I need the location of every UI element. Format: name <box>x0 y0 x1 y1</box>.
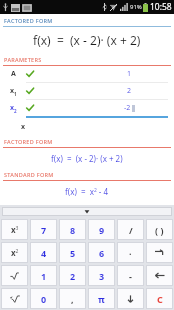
staticText: 2 <box>127 86 132 96</box>
staticText: 6 <box>99 247 105 259</box>
button[interactable]: Arrow right <box>146 242 173 263</box>
button[interactable]: · <box>117 242 144 263</box>
staticText: x <box>21 122 26 132</box>
staticText: 91% <box>130 3 142 11</box>
staticText: 0 <box>41 293 47 305</box>
staticText: 3 <box>99 270 105 282</box>
button[interactable]: 8 <box>59 219 86 240</box>
button[interactable]: Hide keyboard <box>2 207 172 216</box>
staticText: ( ) <box>155 224 164 236</box>
button[interactable]: , <box>59 288 86 309</box>
button[interactable]: 6 <box>88 242 115 263</box>
staticText: x3 <box>11 224 19 235</box>
staticText: 1 <box>127 69 132 79</box>
button[interactable]: x2 <box>0 100 174 118</box>
button[interactable]: Square root <box>1 265 28 286</box>
staticText: 1 <box>41 270 47 282</box>
staticText: f(x) = (x - 2)· (x + 2) <box>33 32 141 48</box>
button[interactable]: 5 <box>59 242 86 263</box>
button[interactable]: 9 <box>88 219 115 240</box>
staticText: x1 <box>10 86 17 97</box>
button[interactable]: x² <box>1 242 28 263</box>
staticText: 2 <box>70 270 76 282</box>
button[interactable]: 4 <box>30 242 57 263</box>
staticText: · <box>129 247 132 259</box>
button[interactable]: Backspace <box>146 265 173 286</box>
staticText: f(x) = (x - 2)· (x + 2) <box>51 153 123 164</box>
button[interactable]: 1 <box>30 265 57 286</box>
staticText: x2 <box>10 103 17 114</box>
staticText: -2 <box>124 103 131 113</box>
staticText: π <box>98 293 105 305</box>
staticText: f(x) = x2 - 4 <box>65 186 109 197</box>
button[interactable]: A <box>0 66 174 83</box>
staticText: - <box>129 270 132 282</box>
button[interactable]: C <box>146 288 173 309</box>
staticText: STANDARD FORM <box>4 171 54 178</box>
staticText: A <box>11 69 16 79</box>
other: USB <box>2 3 9 12</box>
staticText: , <box>71 293 74 305</box>
button[interactable]: 3 <box>88 265 115 286</box>
button[interactable]: Arrow down <box>117 288 144 309</box>
button[interactable]: x1 <box>0 83 174 100</box>
button[interactable]: π <box>88 288 115 309</box>
staticText: 10:58 <box>150 1 172 13</box>
staticText: PARAMETERS <box>4 56 42 63</box>
staticText: 4 <box>41 247 47 259</box>
staticText: 9 <box>99 224 105 236</box>
staticText: 8 <box>70 224 76 236</box>
staticText: FACTORED FORM <box>4 138 53 145</box>
staticText: 5 <box>70 247 76 259</box>
button[interactable]: ( ) <box>146 219 173 240</box>
button[interactable]: / <box>117 219 144 240</box>
staticText: 7 <box>41 224 47 236</box>
button[interactable]: 0 <box>30 288 57 309</box>
button[interactable]: x³ <box>1 219 28 240</box>
button[interactable]: 7 <box>30 219 57 240</box>
staticText: C <box>157 293 163 305</box>
staticText: x2 <box>11 247 19 258</box>
button[interactable]: 2 <box>59 265 86 286</box>
button[interactable]: Nth root <box>1 288 28 309</box>
staticText: FACTORED FORM <box>4 17 53 24</box>
staticText: / <box>129 224 133 236</box>
button[interactable]: - <box>117 265 144 286</box>
